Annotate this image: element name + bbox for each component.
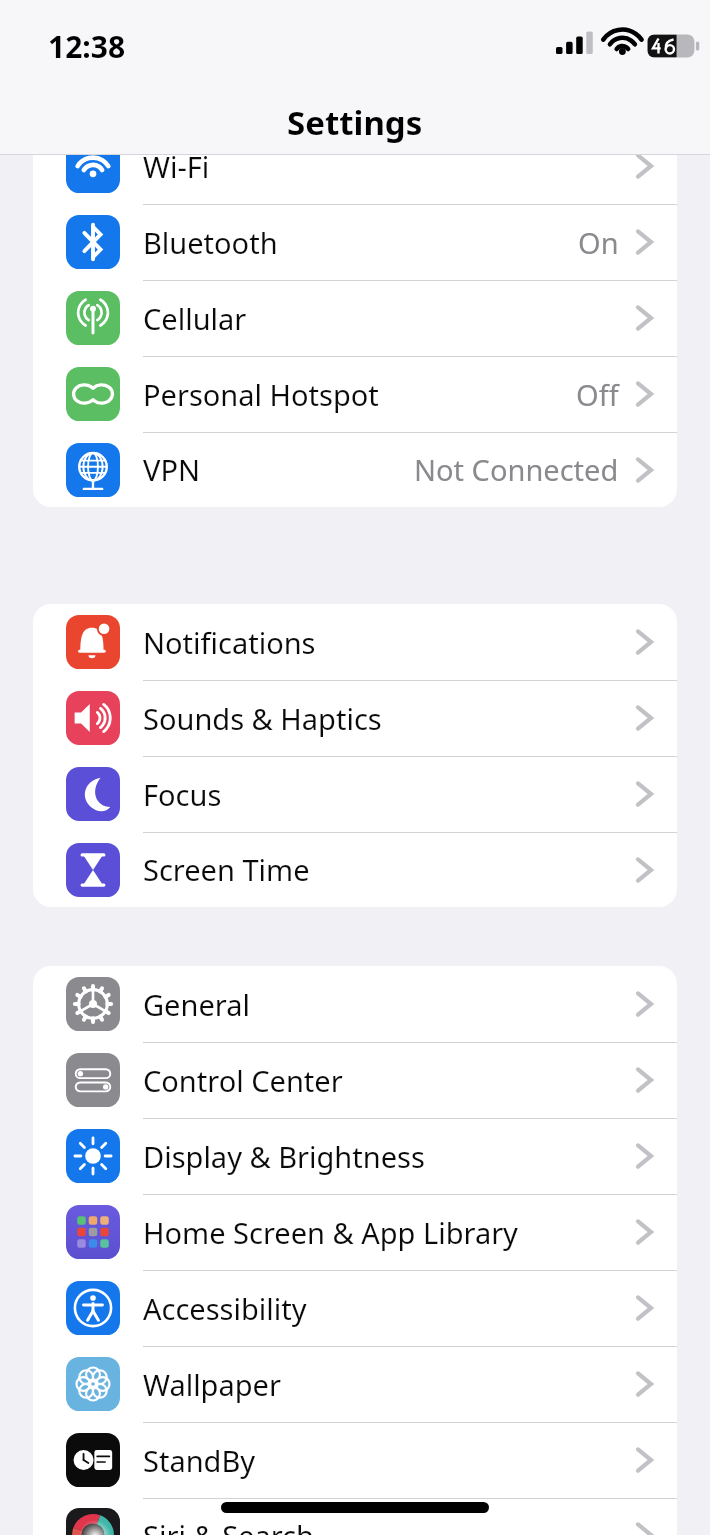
staticText: Screen Time — [143, 850, 310, 889]
button[interactable]: Sounds & Haptics — [33, 680, 677, 756]
button[interactable]: Home Screen & App Library — [33, 1194, 677, 1270]
staticText: Wi-Fi — [143, 147, 210, 186]
button[interactable]: Cellular — [33, 280, 677, 356]
staticText: Control Center — [143, 1061, 343, 1100]
button[interactable]: Accessibility — [33, 1270, 677, 1346]
button[interactable]: Wallpaper — [33, 1346, 677, 1422]
staticText: Not Connected — [414, 450, 619, 489]
staticText: StandBy — [143, 1441, 256, 1480]
button[interactable]: VPN — [33, 432, 677, 507]
staticText: Home Screen & App Library — [143, 1213, 518, 1252]
button[interactable]: Wi-Fi — [33, 128, 677, 204]
button[interactable]: Personal Hotspot — [33, 356, 677, 432]
staticText: Off — [576, 375, 619, 414]
button[interactable]: Siri & Search — [33, 1498, 677, 1535]
staticText: Display & Brightness — [143, 1137, 425, 1176]
staticText: 12:38 — [48, 26, 126, 67]
button[interactable]: Focus — [33, 756, 677, 832]
staticText: Wallpaper — [143, 1365, 281, 1404]
staticText: Notifications — [143, 623, 316, 662]
button[interactable]: Notifications — [33, 604, 677, 680]
staticText: Accessibility — [143, 1289, 307, 1328]
staticText: Bluetooth — [143, 223, 278, 262]
staticText: On — [578, 223, 619, 262]
staticText: VPN — [143, 450, 200, 489]
staticText: Focus — [143, 775, 222, 814]
staticText: Siri & Search — [143, 1516, 314, 1535]
button[interactable]: Bluetooth — [33, 204, 677, 280]
staticText: Settings — [287, 100, 423, 145]
button[interactable]: Screen Time — [33, 832, 677, 907]
button[interactable]: General — [33, 966, 677, 1042]
button[interactable]: StandBy — [33, 1422, 677, 1498]
button[interactable]: Display & Brightness — [33, 1118, 677, 1194]
staticText: Cellular — [143, 299, 247, 338]
button[interactable]: Control Center — [33, 1042, 677, 1118]
staticText: General — [143, 985, 250, 1024]
staticText: Sounds & Haptics — [143, 699, 382, 738]
staticText: Personal Hotspot — [143, 375, 379, 414]
